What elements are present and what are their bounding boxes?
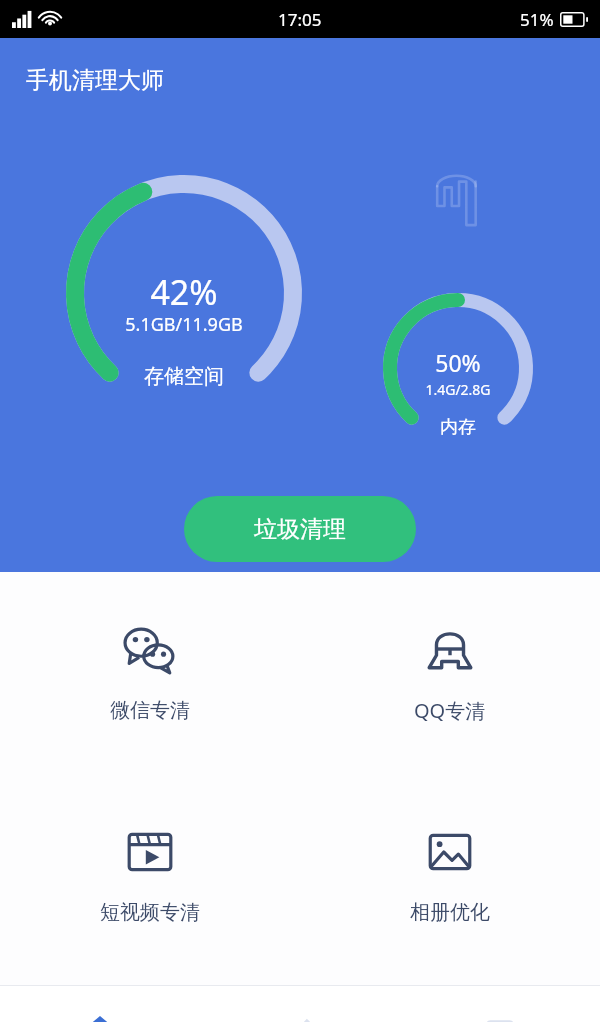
button[interactable]: 垃圾清理: [184, 496, 416, 562]
button[interactable]: 微信专清: [0, 572, 300, 774]
staticText: 存储空间: [66, 364, 302, 389]
button[interactable]: QQ专清: [300, 572, 600, 774]
staticText: 微信专清: [110, 698, 190, 723]
staticText: 手机清理大师: [26, 66, 164, 95]
button[interactable]: 短视频专清: [0, 774, 300, 976]
other: 内存 50%: [383, 293, 533, 443]
staticText: 50%: [383, 347, 533, 378]
staticText: 内存: [383, 416, 533, 439]
staticText: 1.4G/2.8G: [383, 380, 533, 399]
staticText: 短视频专清: [100, 900, 200, 925]
staticText: 垃圾清理: [254, 515, 346, 544]
staticText: 51%: [520, 8, 554, 31]
staticText: 相册优化: [410, 900, 490, 925]
other: 存储空间 42%: [66, 175, 302, 411]
button[interactable]: 相册优化: [300, 774, 600, 976]
staticText: 42%: [66, 269, 302, 315]
staticText: QQ专清: [414, 697, 486, 724]
staticText: 5.1GB/11.9GB: [66, 312, 302, 337]
staticText: 17:05: [278, 8, 322, 31]
button[interactable]: 首页: [0, 986, 200, 1022]
